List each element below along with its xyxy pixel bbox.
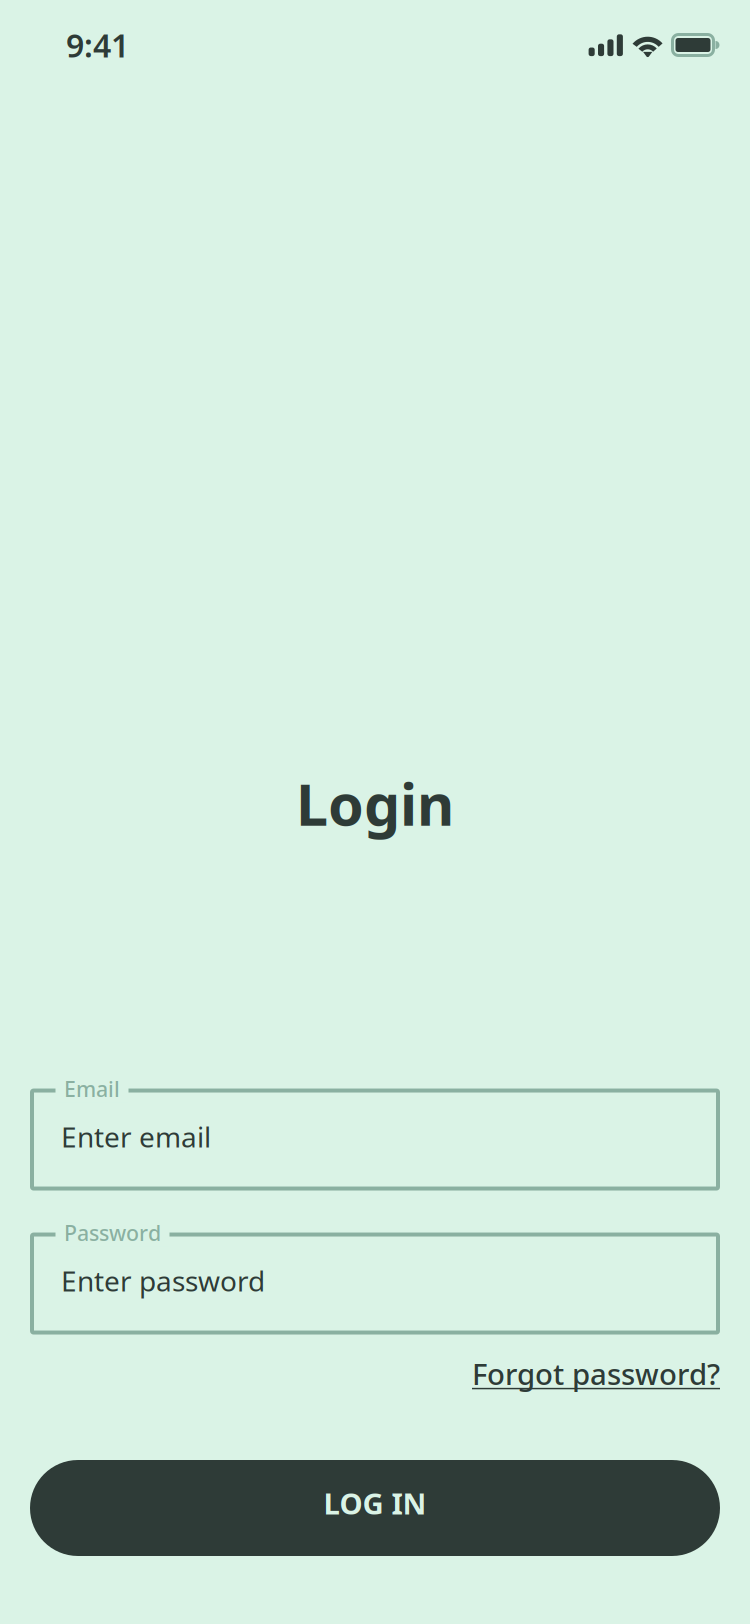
button[interactable]: Forgot password?: [472, 1352, 720, 1391]
staticText: Password: [64, 1218, 161, 1247]
staticText: Enter email: [61, 1118, 211, 1155]
staticText: LOG IN: [323, 1483, 426, 1522]
staticText: Login: [296, 765, 454, 841]
button[interactable]: Enter email: [30, 1090, 720, 1188]
staticText: Forgot password?: [472, 1354, 720, 1393]
staticText: Enter password: [61, 1262, 265, 1299]
button[interactable]: LOG IN: [30, 1460, 720, 1556]
staticText: Email: [64, 1074, 120, 1103]
staticText: 9:41: [66, 24, 129, 66]
button[interactable]: Enter password: [30, 1234, 720, 1332]
